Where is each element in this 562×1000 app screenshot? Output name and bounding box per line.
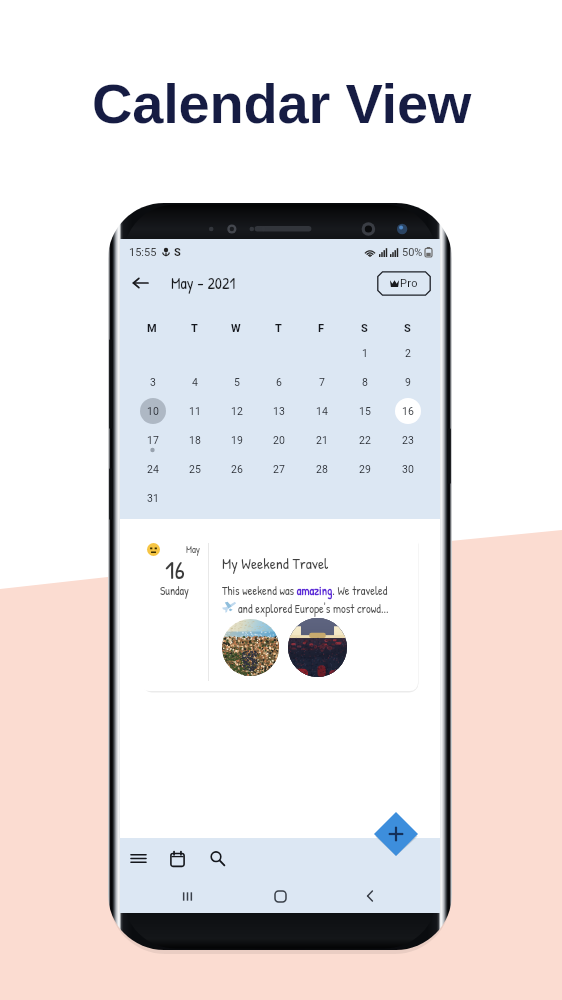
button[interactable]: 17 bbox=[139, 426, 166, 453]
button[interactable]: 21 bbox=[308, 426, 335, 453]
button[interactable]: 14 bbox=[308, 397, 335, 424]
button[interactable]: Recents bbox=[172, 881, 202, 911]
staticText: W bbox=[231, 322, 241, 335]
button[interactable]: Add event bbox=[374, 812, 418, 856]
button[interactable]: 13 bbox=[265, 397, 292, 424]
staticText: 50% bbox=[402, 246, 423, 259]
button[interactable]: 28 bbox=[308, 455, 335, 482]
button[interactable]: 22 bbox=[351, 426, 378, 453]
staticText: S bbox=[404, 322, 411, 335]
staticText: 31 bbox=[147, 492, 159, 504]
staticText: 3 bbox=[150, 376, 156, 388]
staticText: 10 bbox=[147, 405, 159, 417]
staticText: Sunday bbox=[160, 583, 189, 599]
button[interactable]: 1 bbox=[351, 339, 378, 366]
button[interactable]: Back bbox=[125, 268, 155, 298]
button[interactable]: 6 bbox=[265, 368, 292, 395]
staticText: 15:55 bbox=[129, 246, 157, 259]
button[interactable]: 5 bbox=[223, 368, 250, 395]
staticText: 19 bbox=[231, 434, 243, 446]
button[interactable]: 26 bbox=[223, 455, 250, 482]
staticText: S bbox=[174, 246, 181, 259]
button[interactable]: 12 bbox=[223, 397, 250, 424]
button[interactable]: 31 bbox=[139, 484, 166, 511]
button[interactable]: Pro bbox=[377, 271, 431, 296]
button[interactable]: 11 bbox=[181, 397, 208, 424]
staticText: 4 bbox=[192, 376, 198, 388]
staticText: Pro bbox=[400, 277, 418, 290]
button[interactable]: 24 bbox=[139, 455, 166, 482]
staticText: 2 bbox=[405, 347, 411, 359]
staticText: 24 bbox=[147, 463, 159, 475]
staticText: M bbox=[147, 322, 157, 335]
staticText: May bbox=[186, 543, 201, 557]
button[interactable]: 3 bbox=[139, 368, 166, 395]
staticText: Calendar View bbox=[92, 72, 472, 135]
staticText: S bbox=[361, 322, 368, 335]
staticText: This weekend was amazing. We traveled bbox=[222, 583, 388, 599]
button[interactable]: Home bbox=[265, 881, 295, 911]
staticText: T bbox=[191, 322, 198, 335]
staticText: 29 bbox=[359, 463, 371, 475]
button[interactable]: 4 bbox=[181, 368, 208, 395]
button[interactable]: 8 bbox=[351, 368, 378, 395]
button[interactable]: 16 bbox=[394, 397, 421, 424]
button[interactable]: 7 bbox=[308, 368, 335, 395]
button[interactable]: 19 bbox=[223, 426, 250, 453]
staticText: 26 bbox=[231, 463, 243, 475]
button[interactable]: 9 bbox=[394, 368, 421, 395]
staticText: and explored Europe's most crowd... bbox=[238, 601, 389, 617]
staticText: 1 bbox=[362, 347, 368, 359]
staticText: 14 bbox=[316, 405, 328, 417]
button[interactable]: 25 bbox=[181, 455, 208, 482]
staticText: 8 bbox=[362, 376, 368, 388]
staticText: 12 bbox=[231, 405, 243, 417]
staticText: 27 bbox=[273, 463, 285, 475]
staticText: 17 bbox=[147, 434, 159, 446]
button[interactable]: 2 bbox=[394, 339, 421, 366]
staticText: May - 2021 bbox=[171, 272, 236, 294]
button[interactable]: Search bbox=[203, 844, 232, 873]
button[interactable]: Menu bbox=[124, 844, 153, 873]
button[interactable]: May bbox=[141, 533, 418, 691]
staticText: 22 bbox=[359, 434, 371, 446]
button[interactable]: 15 bbox=[351, 397, 378, 424]
button[interactable]: 20 bbox=[265, 426, 292, 453]
staticText: 23 bbox=[402, 434, 414, 446]
staticText: 5 bbox=[234, 376, 240, 388]
staticText: 13 bbox=[273, 405, 285, 417]
button[interactable]: 29 bbox=[351, 455, 378, 482]
staticText: 16 bbox=[402, 405, 414, 417]
staticText: 20 bbox=[273, 434, 285, 446]
button[interactable]: Back bbox=[355, 881, 385, 911]
staticText: F bbox=[318, 322, 325, 335]
staticText: 15 bbox=[359, 405, 371, 417]
button[interactable]: 10 bbox=[139, 397, 166, 424]
staticText: 6 bbox=[276, 376, 282, 388]
staticText: 25 bbox=[189, 463, 201, 475]
staticText: 9 bbox=[405, 376, 411, 388]
staticText: 28 bbox=[316, 463, 328, 475]
staticText: 7 bbox=[319, 376, 325, 388]
button[interactable]: Calendar bbox=[163, 844, 192, 873]
button[interactable]: 30 bbox=[394, 455, 421, 482]
staticText: 30 bbox=[402, 463, 414, 475]
staticText: My Weekend Travel bbox=[222, 553, 329, 574]
button[interactable]: 27 bbox=[265, 455, 292, 482]
staticText: 16 bbox=[165, 552, 185, 587]
button[interactable]: 18 bbox=[181, 426, 208, 453]
staticText: T bbox=[275, 322, 282, 335]
staticText: 18 bbox=[189, 434, 201, 446]
staticText: 21 bbox=[316, 434, 328, 446]
button[interactable]: 23 bbox=[394, 426, 421, 453]
staticText: 11 bbox=[189, 405, 201, 417]
